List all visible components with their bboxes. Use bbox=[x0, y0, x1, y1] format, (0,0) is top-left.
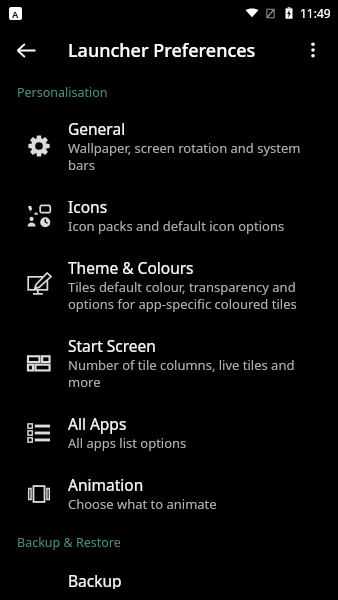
staticText: Personalisation bbox=[17, 84, 108, 101]
button[interactable]: More options bbox=[293, 30, 333, 70]
button[interactable]: Start Screen bbox=[0, 324, 338, 402]
staticText: Tiles default colour, transparency and o… bbox=[68, 278, 322, 313]
staticText: Number of tile columns, live tiles and m… bbox=[68, 356, 322, 391]
button[interactable]: General bbox=[0, 107, 338, 185]
button[interactable]: Navigate up bbox=[6, 30, 46, 70]
staticText: Wallpaper, screen rotation and system ba… bbox=[68, 139, 322, 174]
button[interactable]: Icons bbox=[0, 185, 338, 246]
staticText: General bbox=[68, 118, 126, 139]
staticText: Icon packs and default icon options bbox=[68, 217, 285, 235]
staticText: A bbox=[12, 8, 19, 20]
staticText: Backup bbox=[68, 570, 122, 589]
button[interactable]: Theme & Colours bbox=[0, 246, 338, 324]
staticText: Launcher Preferences bbox=[68, 38, 256, 63]
staticText: Icons bbox=[68, 196, 108, 217]
staticText: Choose what to animate bbox=[68, 495, 217, 513]
staticText: All Apps bbox=[68, 413, 127, 434]
staticText: Backup & Restore bbox=[17, 534, 121, 551]
button[interactable]: Backup bbox=[0, 559, 338, 600]
staticText: Theme & Colours bbox=[68, 257, 194, 278]
staticText: 11:49 bbox=[300, 5, 331, 21]
staticText: All apps list options bbox=[68, 434, 187, 452]
staticText: Start Screen bbox=[68, 335, 156, 356]
staticText: Animation bbox=[68, 474, 144, 495]
button[interactable]: Animation bbox=[0, 463, 338, 524]
button[interactable]: All Apps bbox=[0, 402, 338, 463]
